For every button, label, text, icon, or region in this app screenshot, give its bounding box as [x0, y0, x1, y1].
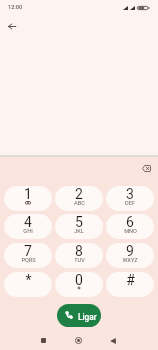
staticText: DEF: [125, 200, 135, 207]
staticText: Ligar: [78, 312, 97, 322]
button[interactable]: Back: [0, 14, 24, 39]
staticText: 5: [75, 214, 83, 230]
staticText: GHI: [23, 228, 33, 235]
button[interactable]: 8: [55, 243, 103, 268]
staticText: JKL: [74, 228, 84, 235]
staticText: #: [126, 272, 135, 288]
button[interactable]: 2: [55, 186, 103, 211]
button[interactable]: *: [4, 272, 52, 297]
staticText: MNO: [124, 228, 137, 235]
button[interactable]: 4: [4, 214, 52, 239]
staticText: 7: [24, 243, 32, 259]
staticText: *: [25, 272, 32, 288]
staticText: 4: [24, 214, 32, 230]
staticText: 9: [126, 243, 134, 259]
button[interactable]: Home: [63, 328, 94, 350]
staticText: 6: [126, 214, 134, 230]
button[interactable]: 5: [55, 214, 103, 239]
button[interactable]: 9: [106, 243, 154, 268]
staticText: 12:00: [8, 4, 23, 11]
staticText: 2: [75, 186, 83, 202]
button[interactable]: #: [106, 272, 154, 297]
staticText: 1: [24, 186, 32, 202]
button[interactable]: Ligar: [57, 304, 101, 327]
staticText: TUV: [74, 257, 85, 264]
staticText: 8: [75, 243, 83, 259]
staticText: 3: [126, 186, 134, 202]
staticText: PQRS: [21, 257, 36, 264]
staticText: ABC: [74, 200, 85, 207]
button[interactable]: 6: [106, 214, 154, 239]
staticText: 0: [75, 272, 83, 288]
button[interactable]: 3: [106, 186, 154, 211]
button[interactable]: Recents: [28, 328, 59, 350]
button[interactable]: Backspace: [135, 157, 158, 179]
button[interactable]: 1: [4, 186, 52, 211]
button[interactable]: 0: [55, 272, 103, 297]
button[interactable]: 7: [4, 243, 52, 268]
staticText: WXYZ: [122, 257, 138, 264]
button[interactable]: Back: [97, 328, 128, 350]
